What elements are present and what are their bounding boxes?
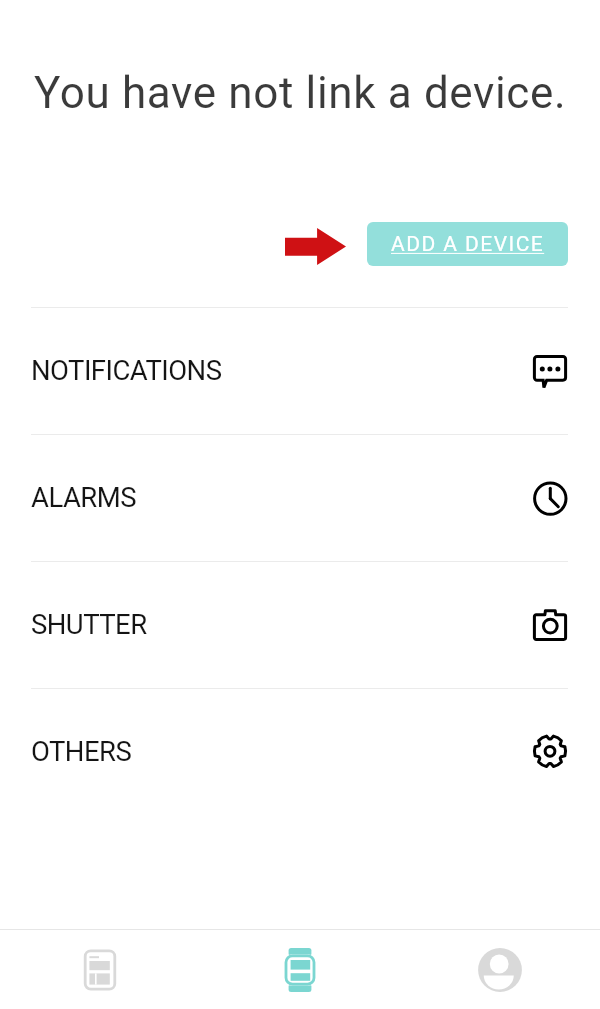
staticText: OTHERS: [31, 735, 132, 767]
staticText: You have not link a device.: [34, 67, 567, 119]
staticText: ADD A DEVICE: [391, 232, 545, 257]
button[interactable]: NOTIFICATIONS: [0, 307, 600, 434]
staticText: ALARMS: [31, 481, 136, 513]
button[interactable]: OTHERS: [0, 688, 600, 815]
staticText: SHUTTER: [31, 608, 147, 640]
button[interactable]: SHUTTER: [0, 561, 600, 688]
button[interactable]: ALARMS: [0, 434, 600, 561]
button[interactable]: Devices list: [0, 930, 200, 1009]
button[interactable]: Profile: [400, 930, 600, 1009]
staticText: NOTIFICATIONS: [31, 354, 222, 386]
button[interactable]: My watch: [200, 930, 400, 1009]
button[interactable]: ADD A DEVICE: [367, 222, 568, 266]
